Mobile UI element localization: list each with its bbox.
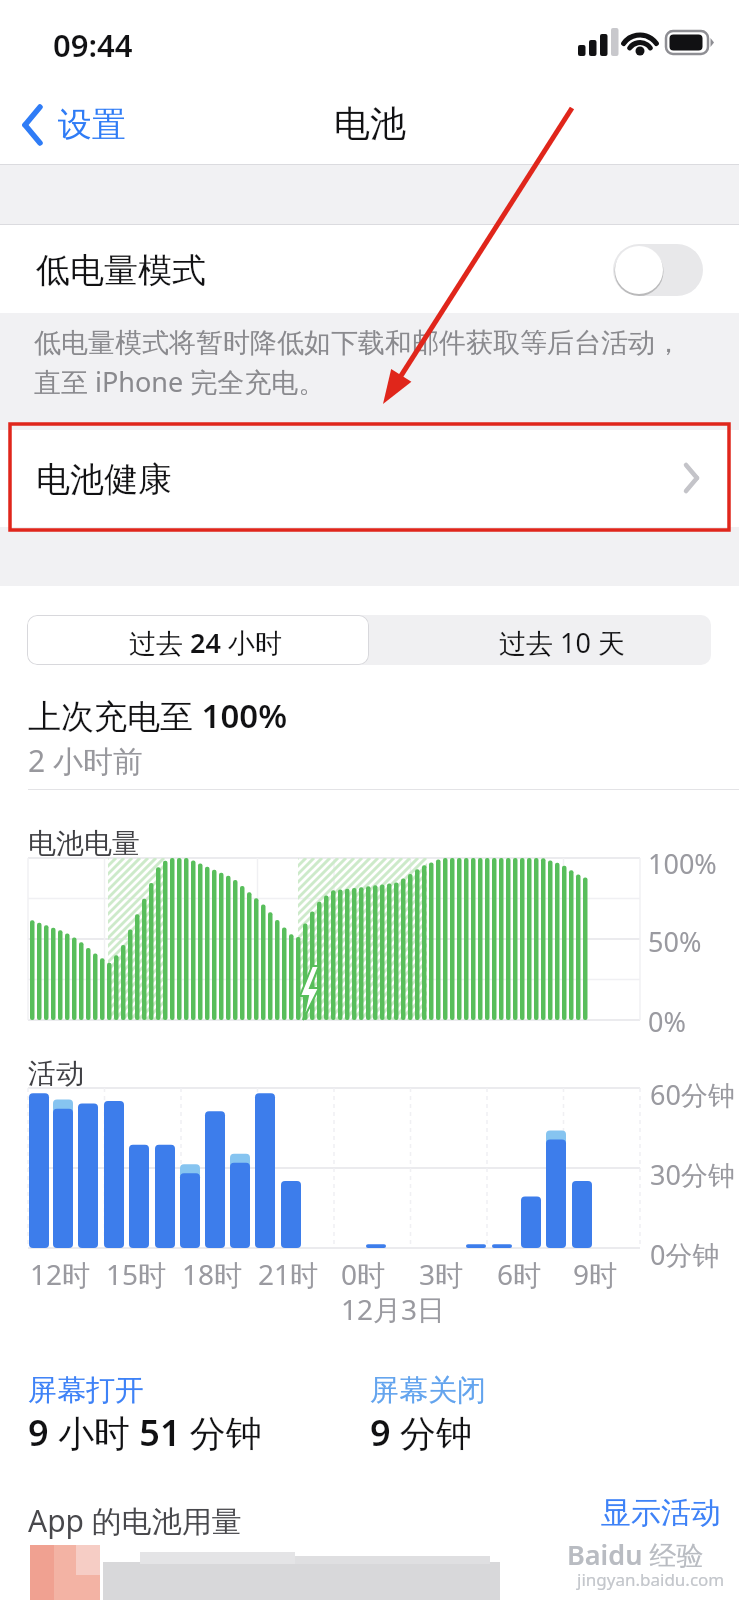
- button[interactable]: [613, 244, 703, 296]
- staticText: 电池: [334, 101, 406, 146]
- staticText: 设置: [58, 103, 126, 146]
- button[interactable]: 设置: [14, 100, 144, 150]
- staticText: 09:44: [53, 24, 133, 66]
- staticText: 100%: [648, 845, 717, 882]
- staticText: 0分钟: [650, 1236, 720, 1273]
- staticText: 15时: [106, 1255, 167, 1293]
- staticText: 9 小时 51 分钟: [28, 1408, 262, 1457]
- staticText: 屏幕打开: [28, 1372, 144, 1409]
- button[interactable]: 过去 10 天: [369, 615, 711, 665]
- button[interactable]: 过去 24 小时: [27, 615, 369, 665]
- staticText: 活动: [28, 1056, 84, 1091]
- button[interactable]: 低电量模式: [0, 225, 739, 313]
- staticText: 电池电量: [28, 826, 140, 861]
- staticText: 0时: [341, 1255, 386, 1293]
- staticText: 过去 24 小时: [129, 624, 282, 661]
- staticText: 9 分钟: [370, 1408, 472, 1457]
- staticText: 3时: [419, 1255, 464, 1293]
- staticText: 12月3日: [341, 1290, 446, 1328]
- staticText: 屏幕关闭: [370, 1372, 486, 1409]
- button[interactable]: 显示活动: [597, 1494, 727, 1534]
- staticText: 电池健康: [36, 458, 172, 501]
- staticText: 60分钟: [650, 1076, 735, 1113]
- staticText: 0%: [648, 1003, 686, 1040]
- staticText: 21时: [258, 1255, 319, 1293]
- staticText: 50%: [648, 923, 702, 960]
- staticText: 低电量模式将暂时降低如下载和邮件获取等后台活动，: [34, 326, 682, 360]
- staticText: 直至 iPhone 完全充电。: [34, 363, 326, 400]
- staticText: 9时: [573, 1255, 618, 1293]
- staticText: 30分钟: [650, 1156, 735, 1193]
- staticText: 18时: [182, 1255, 243, 1293]
- staticText: 6时: [497, 1255, 542, 1293]
- staticText: 低电量模式: [36, 249, 206, 292]
- button[interactable]: 电池健康: [0, 430, 739, 527]
- staticText: jingyan.baidu.com: [577, 1568, 725, 1591]
- staticText: 过去 10 天: [499, 624, 625, 661]
- staticText: 2 小时前: [28, 740, 143, 781]
- staticText: Baidu 经验: [567, 1536, 704, 1573]
- staticText: 显示活动: [601, 1494, 721, 1532]
- staticText: App 的电池用量: [28, 1500, 242, 1541]
- staticText: 12时: [30, 1255, 91, 1293]
- staticText: 上次充电至 100%: [28, 693, 288, 738]
